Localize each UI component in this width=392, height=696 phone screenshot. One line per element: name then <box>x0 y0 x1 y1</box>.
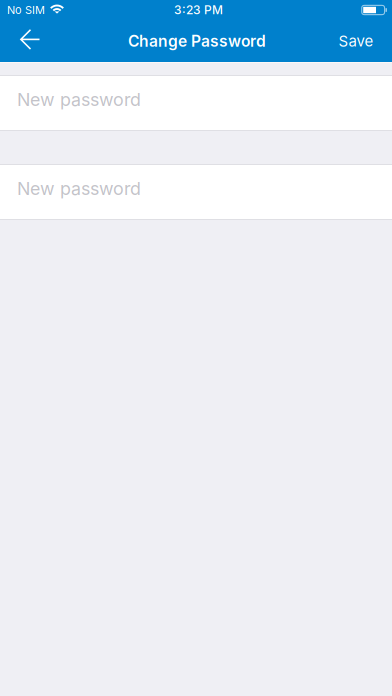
button[interactable]: New password <box>0 164 392 220</box>
button[interactable]: Back <box>0 20 42 62</box>
button[interactable]: Save <box>324 20 387 62</box>
staticText: 3:23 PM <box>174 3 223 17</box>
staticText: Change Password <box>128 32 266 50</box>
staticText: No SIM <box>7 3 45 17</box>
button[interactable]: New password <box>0 75 392 131</box>
staticText: New password <box>17 178 141 199</box>
staticText: New password <box>17 89 141 110</box>
staticText: Save <box>338 32 373 50</box>
